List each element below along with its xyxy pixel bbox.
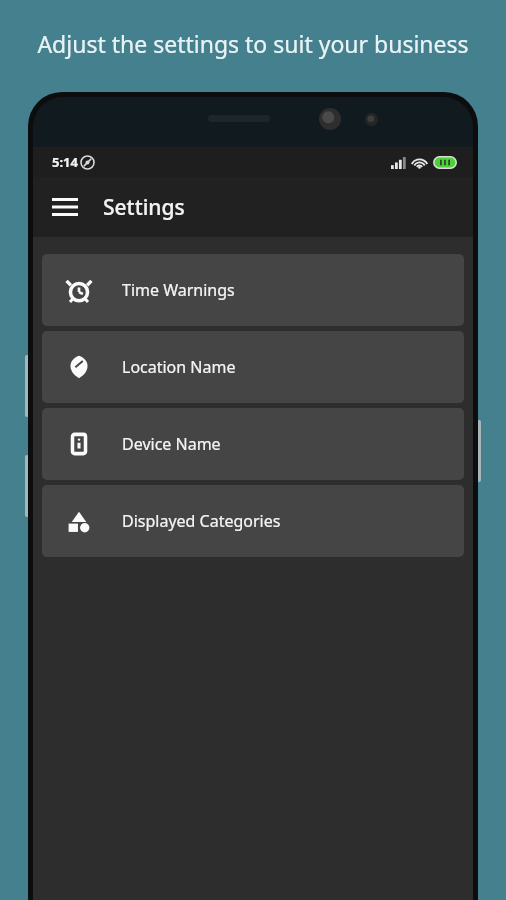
staticText: Time Warnings — [122, 279, 235, 301]
button[interactable]: Open navigation menu — [41, 183, 89, 231]
staticText: Adjust the settings to suit your busines… — [37, 28, 469, 59]
staticText: Location Name — [122, 356, 236, 378]
staticText: Settings — [103, 193, 185, 222]
staticText: Displayed Categories — [122, 510, 281, 532]
button[interactable]: Device Name — [42, 408, 464, 480]
button[interactable]: Displayed Categories — [42, 485, 464, 557]
button[interactable]: Location Name — [42, 331, 464, 403]
staticText: Device Name — [122, 433, 221, 455]
button[interactable]: Time Warnings — [42, 254, 464, 326]
staticText: 5:14 — [52, 153, 78, 171]
